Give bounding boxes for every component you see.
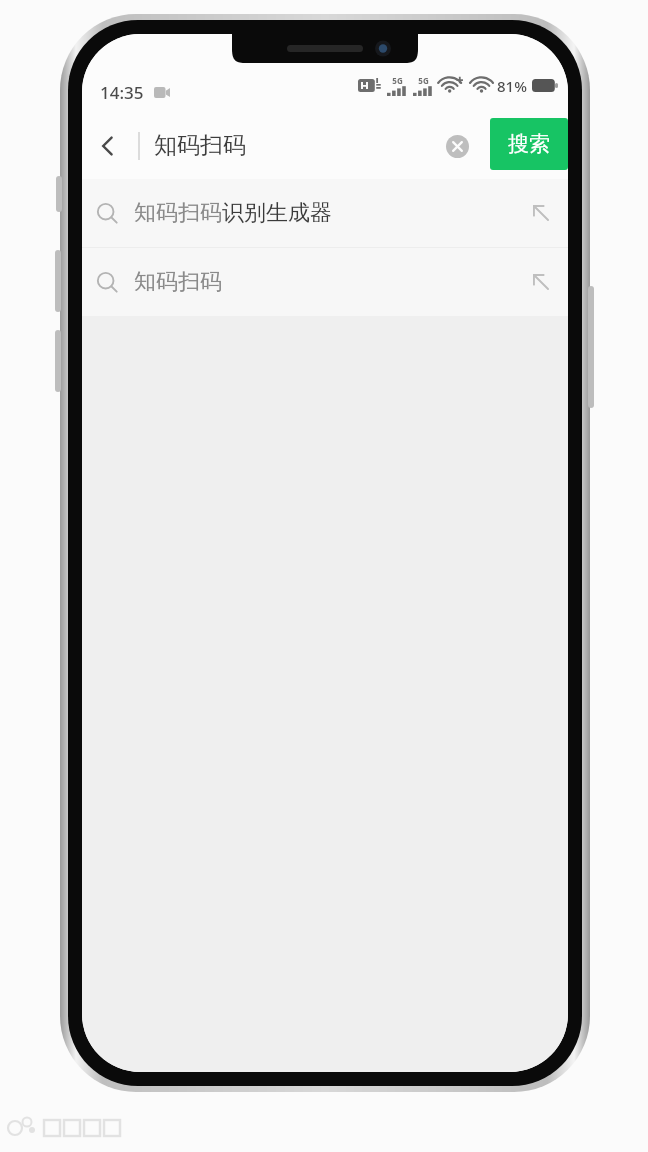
staticText: 知码扫码 [154, 131, 246, 160]
staticText: 81% [497, 76, 527, 96]
staticText: 5G [392, 75, 403, 86]
other: Fill query [530, 271, 552, 293]
button[interactable]: Back [86, 124, 130, 168]
staticText: 5G [418, 75, 429, 86]
staticText: 搜索 [508, 131, 550, 157]
staticText: 知码扫码 [134, 199, 222, 227]
button[interactable]: 知码扫码 [82, 248, 568, 316]
staticText: 14:35 [100, 81, 144, 104]
other: Fill query [530, 202, 552, 224]
button[interactable]: 搜索 [490, 118, 568, 170]
button[interactable]: 知码扫码 [82, 179, 568, 247]
staticText: 识别生成器 [222, 199, 332, 227]
staticText: 知码扫码 [134, 268, 222, 296]
button[interactable]: Clear [437, 126, 477, 166]
